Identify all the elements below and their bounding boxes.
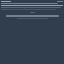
other: Title (1, 1, 11, 2)
button[interactable]: Title (1, 1, 63, 2)
other: Action (57, 1, 63, 2)
